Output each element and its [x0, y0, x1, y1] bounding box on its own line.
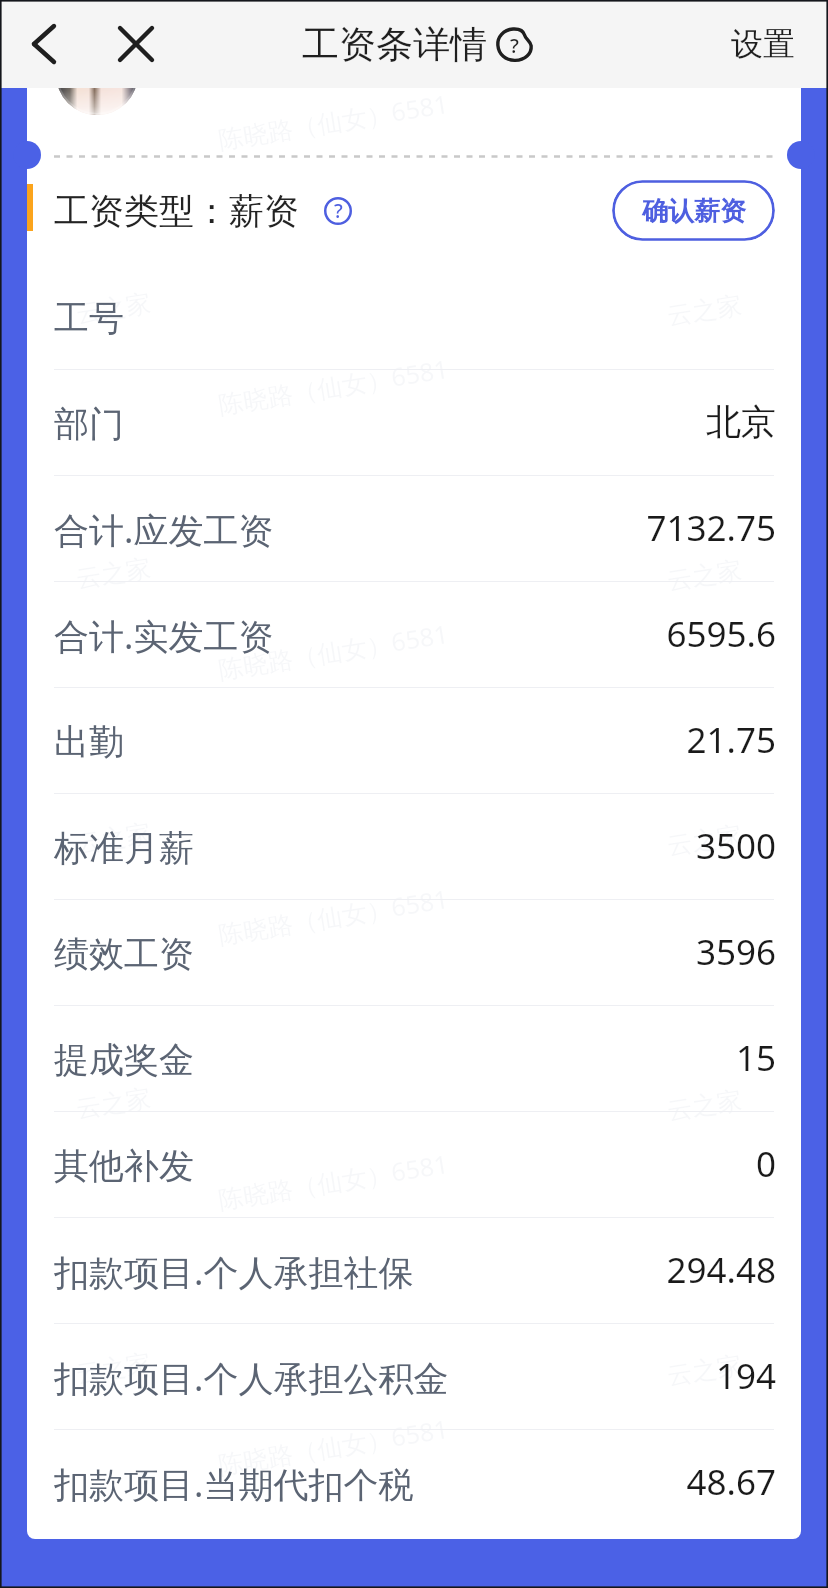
staticText: 部门 — [54, 402, 124, 446]
staticText: 15 — [735, 1034, 776, 1082]
staticText: 云之家 — [74, 552, 153, 595]
button[interactable]: 提成奖金 — [27, 1005, 801, 1111]
button[interactable]: 工号 — [27, 263, 801, 369]
staticText: 陈晓路（仙女）6581 — [216, 1411, 451, 1481]
button[interactable]: 绩效工资 — [27, 899, 801, 1005]
staticText: 合计.实发工资 — [54, 612, 274, 660]
staticText: 7132.75 — [646, 504, 776, 552]
staticText: 提成奖金 — [54, 1038, 194, 1082]
staticText: 48.67 — [686, 1458, 776, 1506]
staticText: 绩效工资 — [54, 932, 194, 976]
staticText: 云之家 — [74, 22, 153, 65]
staticText: 云之家 — [665, 554, 744, 597]
button[interactable]: 工资类型：薪资 — [54, 189, 352, 233]
button[interactable]: 确认薪资 — [612, 180, 775, 241]
button[interactable]: 扣款项目.当期代扣个税 — [27, 1429, 801, 1535]
staticText: ? — [334, 197, 343, 224]
staticText: 扣款项目.当期代扣个税 — [54, 1460, 414, 1508]
staticText: 设置 — [731, 24, 795, 64]
button[interactable]: 扣款项目.个人承担社保 — [27, 1217, 801, 1323]
staticText: 3596 — [695, 928, 776, 976]
button[interactable]: 其他补发 — [27, 1111, 801, 1217]
staticText: 出勤 — [54, 720, 124, 764]
button[interactable]: Close — [108, 16, 164, 72]
staticText: 陈晓路（仙女）6581 — [216, 86, 451, 156]
staticText: 云之家 — [74, 1347, 153, 1390]
staticText: 云之家 — [665, 1349, 744, 1392]
staticText: 其他补发 — [54, 1144, 194, 1188]
staticText: 合计.应发工资 — [54, 506, 274, 554]
staticText: 标准月薪 — [54, 826, 194, 870]
staticText: 陈晓路（仙女）6581 — [216, 616, 451, 686]
staticText: 294.48 — [666, 1246, 776, 1294]
button[interactable]: 合计.实发工资 — [27, 581, 801, 687]
staticText: 云之家 — [665, 1084, 744, 1127]
button[interactable]: 扣款项目.个人承担公积金 — [27, 1323, 801, 1429]
staticText: 扣款项目.个人承担社保 — [54, 1248, 414, 1296]
staticText: 工资条详情 — [302, 21, 487, 68]
button[interactable]: 部门 — [27, 369, 801, 475]
staticText: 云之家 — [665, 24, 744, 67]
staticText: 云之家 — [665, 819, 744, 862]
staticText: 云之家 — [74, 287, 153, 330]
button[interactable]: Back — [16, 16, 72, 72]
staticText: ? — [510, 32, 519, 59]
button[interactable]: 合计.应发工资 — [27, 475, 801, 581]
staticText: 工资类型：薪资 — [54, 189, 299, 233]
staticText: 6595.6 — [666, 610, 776, 658]
button[interactable]: 设置 — [731, 24, 795, 64]
staticText: 21.75 — [686, 716, 776, 764]
button[interactable]: 出勤 — [27, 687, 801, 793]
staticText: 3500 — [695, 822, 776, 870]
staticText: 扣款项目.个人承担公积金 — [54, 1354, 449, 1402]
staticText: 云之家 — [74, 817, 153, 860]
staticText: 确认薪资 — [642, 195, 746, 228]
button[interactable]: 标准月薪 — [27, 793, 801, 899]
staticText: 0 — [755, 1140, 776, 1188]
staticText: 北京 — [706, 400, 776, 444]
staticText: 云之家 — [74, 1082, 153, 1125]
staticText: 工号 — [54, 296, 124, 340]
staticText: 194 — [715, 1352, 776, 1400]
